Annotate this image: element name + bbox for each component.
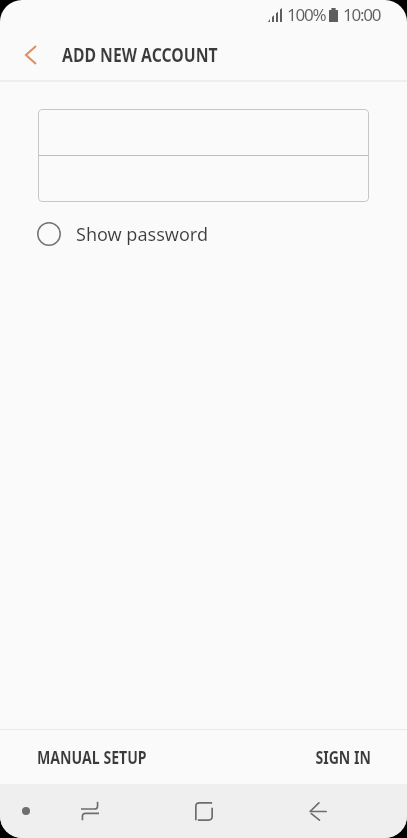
button[interactable] bbox=[38, 109, 369, 155]
staticText: ADD NEW ACCOUNT bbox=[62, 42, 218, 68]
button[interactable]: Home bbox=[177, 784, 231, 838]
staticText: 100% bbox=[287, 3, 326, 26]
button[interactable]: Back bbox=[291, 784, 345, 838]
button[interactable]: SIGN IN bbox=[304, 746, 371, 769]
staticText: Show password bbox=[76, 222, 208, 247]
staticText: 10:00 bbox=[343, 3, 381, 26]
button[interactable]: Navigate up bbox=[0, 29, 62, 80]
button[interactable]: Notification indicator bbox=[9, 794, 43, 828]
button[interactable]: MANUAL SETUP bbox=[37, 746, 170, 769]
button[interactable]: Show password bbox=[0, 216, 407, 252]
button[interactable]: Recents bbox=[63, 784, 117, 838]
button[interactable] bbox=[38, 156, 369, 202]
staticText: MANUAL SETUP bbox=[37, 746, 147, 769]
staticText: SIGN IN bbox=[315, 746, 371, 769]
